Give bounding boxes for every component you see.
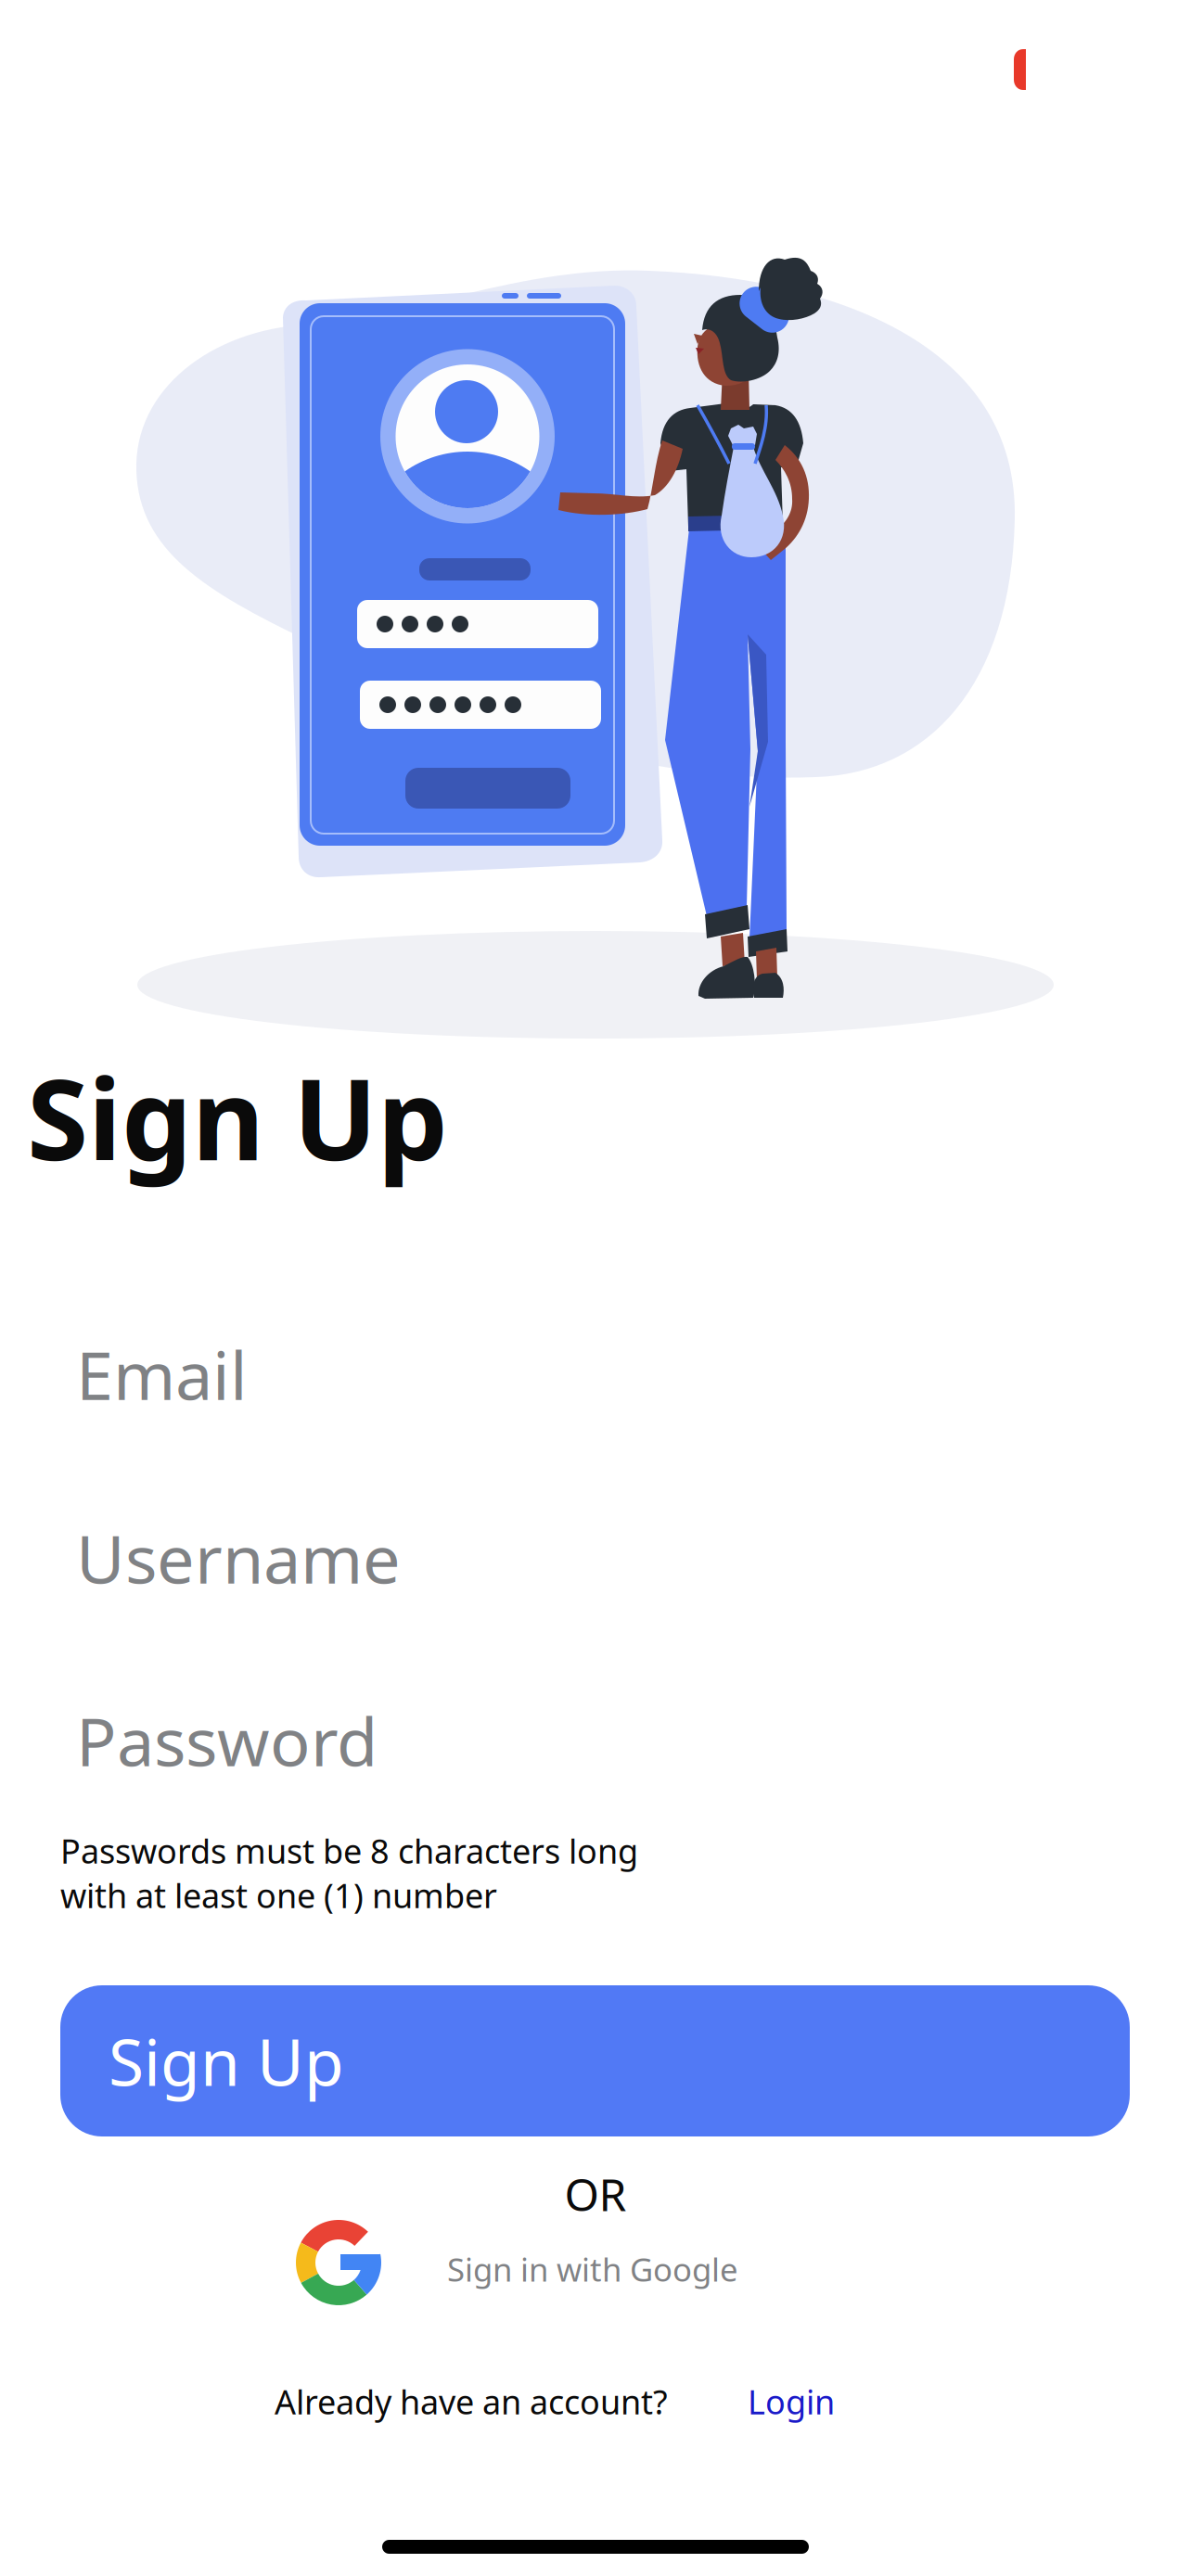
- staticText: Already have an account?: [275, 2379, 668, 2424]
- staticText: OR: [564, 2164, 627, 2223]
- button[interactable]: Sign in with Google: [296, 2220, 750, 2307]
- staticText: Sign in with Google: [447, 2248, 738, 2290]
- staticText: Username: [76, 1513, 401, 1602]
- staticText: Password: [76, 1696, 378, 1785]
- staticText: Passwords must be 8 characters long with…: [60, 1829, 638, 1917]
- button[interactable]: Login: [668, 2379, 835, 2424]
- button[interactable]: Sign Up: [60, 1985, 1130, 2136]
- staticText: Sign Up: [109, 2018, 344, 2104]
- staticText: Email: [76, 1330, 248, 1418]
- staticText: Sign Up: [27, 1043, 448, 1191]
- staticText: Login: [748, 2379, 835, 2424]
